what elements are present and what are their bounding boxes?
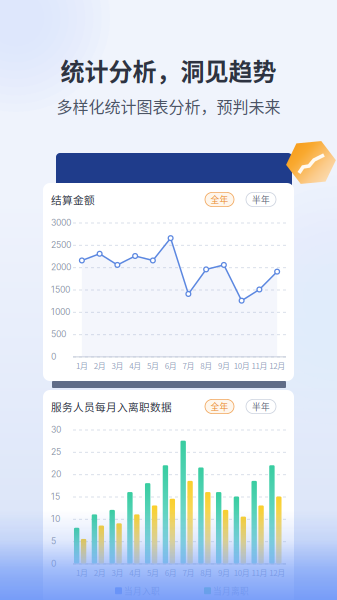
staticText: 7月 bbox=[182, 567, 194, 578]
button[interactable]: 全年 bbox=[205, 399, 234, 413]
staticText: 12月 bbox=[269, 567, 285, 578]
staticText: 全年 bbox=[210, 400, 228, 413]
staticText: 当月离职 bbox=[211, 584, 249, 597]
staticText: 服务人员每月入离职数据 bbox=[51, 399, 172, 414]
staticText: 11月 bbox=[251, 567, 267, 578]
staticText: 10月 bbox=[234, 567, 250, 578]
staticText: 当月入职 bbox=[122, 584, 160, 597]
staticText: 统计分析，洞见趋势 bbox=[60, 53, 276, 87]
staticText: 5月 bbox=[147, 360, 159, 371]
staticText: 4月 bbox=[129, 567, 141, 578]
staticText: 0 bbox=[51, 351, 56, 362]
staticText: 1月 bbox=[76, 567, 88, 578]
staticText: 10月 bbox=[234, 360, 250, 371]
staticText: 结算金额 bbox=[51, 192, 95, 207]
staticText: 0 bbox=[51, 558, 56, 569]
staticText: 6月 bbox=[165, 567, 177, 578]
staticText: 8月 bbox=[200, 567, 212, 578]
staticText: 半年 bbox=[252, 193, 270, 206]
staticText: 1月 bbox=[76, 360, 88, 371]
staticText: 12月 bbox=[269, 360, 285, 371]
staticText: 全年 bbox=[210, 193, 228, 206]
staticText: 3月 bbox=[111, 360, 123, 371]
staticText: 5月 bbox=[147, 567, 159, 578]
staticText: 3000 bbox=[51, 217, 71, 228]
staticText: 多样化统计图表分析，预判未来 bbox=[56, 94, 280, 118]
button[interactable]: 全年 bbox=[205, 192, 234, 206]
staticText: 2500 bbox=[51, 240, 71, 250]
staticText: 2月 bbox=[94, 360, 106, 371]
staticText: 1500 bbox=[51, 284, 70, 295]
staticText: 11月 bbox=[251, 360, 267, 371]
staticText: 9月 bbox=[218, 567, 230, 578]
staticText: 半年 bbox=[252, 400, 270, 413]
staticText: 30 bbox=[51, 424, 61, 435]
button[interactable]: 半年 bbox=[246, 192, 276, 206]
staticText: 5 bbox=[51, 536, 56, 546]
staticText: 7月 bbox=[182, 360, 194, 371]
staticText: 20 bbox=[51, 469, 61, 479]
button[interactable]: 半年 bbox=[246, 399, 276, 413]
staticText: 6月 bbox=[165, 360, 177, 371]
staticText: 8月 bbox=[200, 360, 212, 371]
staticText: 15 bbox=[51, 491, 60, 502]
staticText: 1000 bbox=[51, 307, 70, 317]
staticText: 9月 bbox=[218, 360, 230, 371]
staticText: 500 bbox=[51, 329, 66, 339]
staticText: 25 bbox=[51, 447, 61, 457]
staticText: 2000 bbox=[51, 262, 71, 272]
staticText: 3月 bbox=[111, 567, 123, 578]
staticText: 2月 bbox=[94, 567, 106, 578]
staticText: 4月 bbox=[129, 360, 141, 371]
staticText: 10 bbox=[51, 514, 60, 524]
